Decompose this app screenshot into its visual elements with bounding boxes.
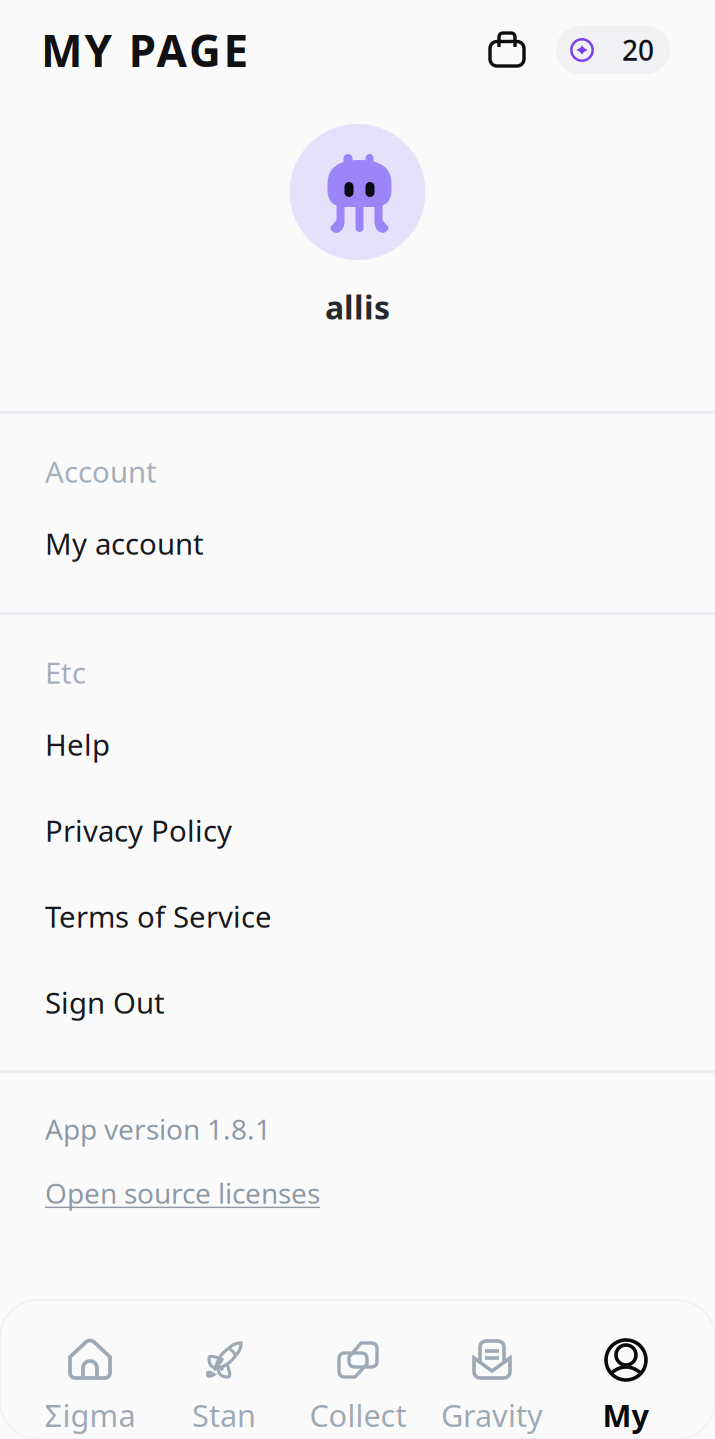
button[interactable]: Privacy Policy [0,775,715,861]
button[interactable]: My [559,1300,693,1439]
button[interactable]: Shop [488,31,528,69]
staticText: allis [325,286,390,328]
staticText: Help [45,725,110,764]
staticText: Stan [192,1395,256,1435]
staticText: 20 [622,31,654,69]
button[interactable]: Terms of Service [0,861,715,947]
staticText: Privacy Policy [45,811,232,850]
staticText: Open source licenses [45,1174,320,1212]
staticText: My [602,1395,649,1435]
staticText: Collect [309,1395,406,1435]
button[interactable]: Collect [291,1300,425,1439]
staticText: Σigma [44,1395,135,1435]
staticText: MY PAGE [41,21,249,79]
staticText: App version 1.8.1 [45,1110,271,1148]
button[interactable]: Stan [157,1300,291,1439]
button[interactable]: My account [0,488,715,574]
staticText: Etc [45,653,86,692]
staticText: My account [45,524,204,563]
button[interactable]: Gravity [425,1300,559,1439]
button[interactable]: Help [0,689,715,775]
button[interactable]: Points: 20 [556,26,670,74]
staticText: Gravity [441,1395,543,1435]
staticText: Account [45,452,157,491]
button[interactable]: Σigma [23,1300,157,1439]
button[interactable]: Sign Out [0,947,715,1033]
staticText: Sign Out [45,983,165,1022]
button[interactable]: Open source licenses [45,1171,320,1215]
staticText: Terms of Service [45,897,272,936]
